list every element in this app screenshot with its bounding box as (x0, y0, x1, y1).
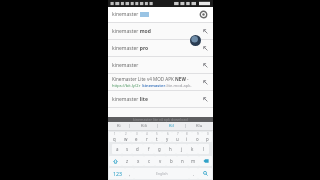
button[interactable]: Backspace (199, 156, 212, 166)
button[interactable]: Kinemaster Lite v4 MOD APK NEW - NoBanng… (108, 74, 213, 91)
button[interactable]: Search (198, 168, 212, 179)
staticText: English (156, 171, 168, 176)
staticText: p (206, 136, 209, 142)
button[interactable]: 4 (142, 132, 152, 142)
button[interactable]: 6 (162, 132, 172, 142)
staticText: Ki (117, 123, 121, 129)
staticText: w (124, 136, 128, 142)
button[interactable]: x (133, 156, 144, 166)
button[interactable]: b (166, 156, 177, 166)
staticText: kinemaster lite v4 apk download (133, 117, 188, 122)
button[interactable]: c (144, 156, 155, 166)
button[interactable]: j (176, 144, 187, 154)
button[interactable]: 8 (182, 132, 192, 142)
button[interactable]: Ki (108, 122, 129, 130)
staticText: kinemaster mod (112, 28, 201, 35)
button[interactable]: l (198, 144, 209, 154)
button[interactable]: Kil (158, 122, 185, 130)
button[interactable]: 0 (202, 132, 212, 142)
button[interactable]: Insert suggestion (201, 44, 210, 53)
staticText: f (148, 146, 150, 152)
staticText: 1 (114, 132, 116, 136)
button[interactable]: 9 (192, 132, 202, 142)
button[interactable]: s (122, 144, 132, 154)
staticText: o (196, 136, 199, 142)
staticText: h (169, 146, 172, 152)
staticText: x (137, 158, 140, 164)
button[interactable]: 3 (131, 132, 142, 142)
staticText: kinemaster (112, 62, 201, 69)
staticText: m (191, 158, 196, 164)
button[interactable]: Insert suggestion (201, 95, 210, 104)
staticText: i (186, 136, 188, 142)
staticText: a (116, 146, 119, 152)
button[interactable]: Insert suggestion (201, 78, 210, 87)
staticText: Klu (196, 123, 203, 129)
button[interactable]: kinemaster mod (108, 23, 213, 40)
button[interactable]: k (187, 144, 198, 154)
staticText: z (126, 158, 129, 164)
button[interactable]: 7 (172, 132, 182, 142)
button[interactable]: kinemaster (108, 57, 213, 74)
staticText: e (135, 136, 138, 142)
staticText: 2 (125, 132, 127, 136)
button[interactable]: kinemaster pro (108, 40, 213, 57)
button[interactable]: 5 (152, 132, 162, 142)
button[interactable]: z (122, 156, 133, 166)
staticText: 0 (207, 132, 209, 136)
staticText: g (158, 146, 161, 152)
button[interactable]: 123 (109, 168, 125, 179)
button[interactable]: kinemaster lite (108, 91, 213, 108)
staticText: b (170, 158, 173, 164)
staticText: q (113, 136, 116, 142)
staticText: t (156, 136, 158, 142)
staticText: 8 (186, 132, 188, 136)
button[interactable]: v (155, 156, 166, 166)
staticText: kinemaster (112, 11, 139, 18)
button[interactable]: 2 (120, 132, 131, 142)
staticText: j (181, 146, 183, 152)
staticText: c (148, 158, 151, 164)
button[interactable]: d (132, 144, 143, 154)
staticText: Kili (141, 123, 147, 129)
button[interactable]: g (154, 144, 165, 154)
staticText: y (166, 136, 169, 142)
staticText: kinemaster pro (112, 45, 201, 52)
button[interactable]: Kili (130, 122, 157, 130)
button[interactable]: f (143, 144, 154, 154)
staticText: r (146, 136, 148, 142)
staticText: Kil (169, 123, 174, 129)
button[interactable]: n (177, 156, 188, 166)
button[interactable]: Insert suggestion (201, 61, 210, 70)
staticText: l (203, 146, 205, 152)
button[interactable]: Shift (109, 156, 122, 166)
button[interactable]: kinemaster (108, 7, 213, 22)
button[interactable]: . (189, 168, 198, 179)
staticText: 7 (177, 132, 179, 136)
staticText: 6 (167, 132, 169, 136)
button[interactable]: Voice search (198, 9, 209, 20)
button[interactable]: Space (134, 168, 189, 179)
staticText: , (129, 171, 131, 177)
staticText: 5 (156, 132, 158, 136)
staticText: 4 (146, 132, 148, 136)
staticText: d (136, 146, 139, 152)
button[interactable]: Insert suggestion (201, 27, 210, 36)
staticText: https://bit.ly/2r kinemaster-lite-mod-ap… (112, 83, 201, 88)
button[interactable]: 1 (109, 132, 120, 142)
button[interactable]: , (125, 168, 134, 179)
staticText: n (181, 158, 184, 164)
button[interactable]: m (188, 156, 199, 166)
staticText: 9 (197, 132, 199, 136)
button[interactable]: h (165, 144, 176, 154)
staticText: 3 (136, 132, 138, 136)
staticText: k (191, 146, 194, 152)
staticText: s (126, 146, 129, 152)
staticText: Kinemaster Lite v4 MOD APK NEW - NoBanng… (112, 76, 201, 82)
button[interactable]: a (112, 144, 122, 154)
staticText: 123 (113, 170, 122, 177)
staticText: kinemaster lite (112, 96, 201, 103)
staticText: . (193, 171, 195, 177)
button[interactable]: Klu (186, 122, 213, 130)
staticText: v (159, 158, 162, 164)
